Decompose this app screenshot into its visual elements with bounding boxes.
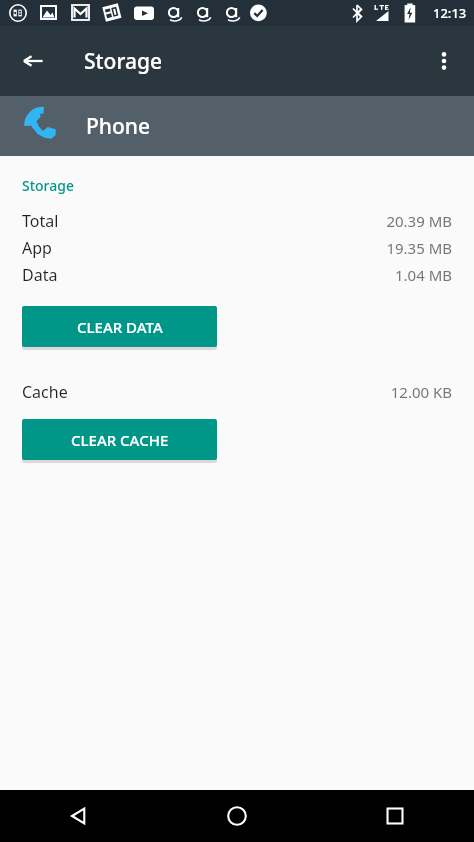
button[interactable]: Recent apps [316, 790, 474, 842]
staticText: Cache [22, 381, 68, 403]
button[interactable]: CLEAR DATA [22, 306, 217, 347]
button[interactable]: Home [158, 790, 316, 842]
staticText: 20.39 MB [386, 211, 452, 231]
staticText: 19.35 MB [386, 238, 452, 258]
staticText: CLEAR DATA [77, 317, 163, 337]
staticText: App [22, 237, 52, 259]
button[interactable]: Cache [0, 378, 474, 405]
button[interactable]: CLEAR CACHE [22, 419, 217, 460]
button[interactable]: More options [421, 38, 467, 84]
button[interactable]: Back [10, 38, 56, 84]
button[interactable]: App [0, 234, 474, 261]
staticText: Storage [22, 176, 74, 195]
staticText: Data [22, 264, 58, 286]
staticText: Total [22, 210, 59, 232]
button[interactable]: Back [0, 790, 158, 842]
staticText: 12:13 [433, 4, 467, 22]
staticText: CLEAR CACHE [71, 430, 169, 450]
staticText: 1.04 MB [394, 265, 452, 285]
staticText: 12.00 KB [390, 382, 452, 402]
button[interactable]: Data [0, 261, 474, 288]
staticText: Storage [84, 47, 162, 76]
button[interactable]: Total [0, 207, 474, 234]
staticText: Phone [86, 112, 151, 141]
